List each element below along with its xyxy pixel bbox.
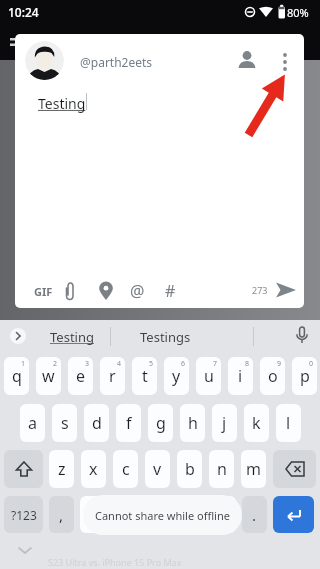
button[interactable] [56, 276, 83, 306]
staticText: 9 [277, 359, 282, 369]
staticText: 7 [213, 359, 218, 369]
button[interactable]: p [292, 357, 317, 395]
staticText: o [268, 365, 278, 387]
button[interactable]: z [49, 450, 74, 488]
staticText: g [156, 412, 166, 434]
button[interactable] [273, 450, 316, 488]
button[interactable] [80, 496, 236, 533]
button[interactable] [273, 46, 297, 76]
staticText: m [246, 458, 261, 480]
staticText: # [165, 280, 176, 302]
staticText: p [300, 365, 310, 387]
button[interactable]: b [177, 450, 202, 488]
button[interactable] [4, 450, 43, 488]
staticText: Testings [140, 328, 191, 346]
staticText: v [153, 458, 162, 480]
button[interactable]: s [52, 404, 77, 442]
button[interactable]: n [209, 450, 234, 488]
button[interactable] [288, 322, 316, 352]
button[interactable]: w [36, 357, 61, 395]
staticText: a [28, 412, 37, 434]
button[interactable]: m [241, 450, 266, 488]
button[interactable]: g [148, 404, 173, 442]
staticText: l [286, 412, 291, 434]
staticText: 0 [309, 359, 314, 369]
staticText: y [172, 365, 181, 387]
staticText: @ [130, 280, 145, 302]
button[interactable]: a [20, 404, 45, 442]
staticText: d [92, 412, 102, 434]
staticText: Testing [50, 328, 94, 346]
button[interactable]: r [100, 357, 125, 395]
button[interactable]: i [228, 357, 253, 395]
staticText: j [222, 412, 227, 434]
staticText: 5 [149, 359, 154, 369]
staticText: w [42, 365, 55, 387]
staticText: 1 [21, 359, 26, 369]
staticText: 8 [245, 359, 250, 369]
button[interactable]: q [4, 357, 29, 395]
staticText: z [58, 458, 66, 480]
staticText: k [252, 412, 261, 434]
staticText: , [59, 505, 64, 525]
staticText: f [126, 412, 132, 434]
button[interactable]: y [164, 357, 189, 395]
staticText: c [122, 458, 130, 480]
button[interactable] [10, 328, 26, 344]
button[interactable]: o [260, 357, 285, 395]
staticText: q [12, 365, 22, 387]
staticText: Testing [38, 94, 86, 113]
button[interactable]: . [242, 496, 267, 533]
button[interactable]: x [81, 450, 106, 488]
button[interactable]: d [84, 404, 109, 442]
button[interactable]: v [145, 450, 170, 488]
staticText: @parth2eets [80, 54, 153, 70]
staticText: 4 [117, 359, 122, 369]
staticText: 3 [85, 359, 90, 369]
button[interactable] [270, 274, 302, 306]
staticText: x [89, 458, 98, 480]
button[interactable]: u [196, 357, 221, 395]
button[interactable]: f [116, 404, 141, 442]
staticText: 10:24 [8, 4, 39, 20]
button[interactable]: GIF [21, 276, 65, 306]
button[interactable] [92, 276, 120, 306]
button[interactable]: h [180, 404, 205, 442]
staticText: s [61, 412, 69, 434]
button[interactable]: ?123 [4, 496, 43, 533]
staticText: t [142, 365, 148, 387]
staticText: 2 [53, 359, 58, 369]
staticText: h [188, 412, 198, 434]
button[interactable]: Testing [36, 320, 108, 353]
button[interactable]: e [68, 357, 93, 395]
staticText: Cannot share while offline [95, 508, 230, 523]
staticText: GIF [34, 284, 53, 299]
button[interactable]: t [132, 357, 157, 395]
button[interactable]: c [113, 450, 138, 488]
button[interactable]: k [244, 404, 269, 442]
staticText: u [204, 365, 214, 387]
staticText: S23 Ultra vs. iPhone 15 Pro Max [48, 556, 182, 568]
staticText: i [238, 365, 243, 387]
staticText: . [252, 505, 257, 525]
staticText: 6 [181, 359, 186, 369]
staticText: n [217, 458, 227, 480]
button[interactable]: # [156, 276, 184, 306]
button[interactable]: l [276, 404, 301, 442]
button[interactable]: @ [123, 276, 151, 306]
button[interactable] [273, 496, 314, 533]
staticText: 80% [287, 5, 309, 20]
staticText: b [185, 458, 195, 480]
button[interactable]: Testings [112, 320, 218, 353]
button[interactable]: j [212, 404, 237, 442]
button[interactable]: , [49, 496, 74, 533]
button[interactable] [233, 46, 261, 74]
staticText: r [109, 365, 116, 387]
staticText: ?123 [11, 507, 37, 523]
staticText: 273 [252, 284, 268, 296]
staticText: e [76, 365, 86, 387]
